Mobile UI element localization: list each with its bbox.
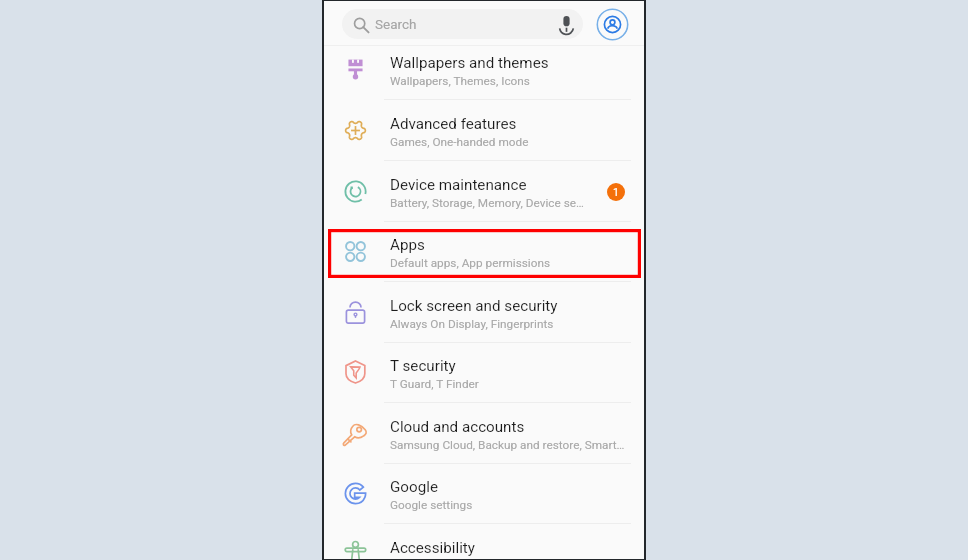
staticText: Wallpapers and themes [390, 54, 549, 72]
staticText: Advanced features [390, 115, 517, 133]
staticText: Cloud and accounts [390, 418, 525, 436]
button[interactable]: Accessibility [324, 524, 644, 559]
button[interactable]: Device maintenance [324, 161, 644, 222]
staticText: Default apps, App permissions [390, 256, 551, 270]
button[interactable]: Voice search [555, 13, 578, 36]
staticText: Google settings [390, 498, 473, 512]
button[interactable]: Advanced features [324, 100, 644, 161]
staticText: Battery, Storage, Memory, Device se… [390, 196, 584, 210]
button[interactable]: Account [596, 8, 629, 41]
staticText: Device maintenance [390, 176, 527, 194]
button[interactable]: Wallpapers and themes [324, 46, 644, 100]
staticText: Games, One-handed mode [390, 135, 529, 149]
staticText: 1 [613, 186, 619, 198]
button[interactable]: Lock screen and security [324, 282, 644, 343]
button[interactable]: Cloud and accounts [324, 403, 644, 464]
staticText: T security [390, 357, 456, 375]
staticText: Lock screen and security [390, 297, 558, 315]
button[interactable]: Apps [324, 221, 644, 282]
staticText: Accessibility [390, 539, 475, 557]
button[interactable]: Google [324, 463, 644, 524]
staticText: Samsung Cloud, Backup and restore, Smart… [390, 438, 625, 452]
staticText: Wallpapers, Themes, Icons [390, 74, 530, 88]
staticText: Google [390, 478, 438, 496]
staticText: Apps [390, 236, 425, 254]
staticText: Search [375, 16, 417, 32]
staticText: T Guard, T Finder [390, 377, 479, 391]
staticText: Always On Display, Fingerprints [390, 317, 554, 331]
button[interactable]: T security [324, 342, 644, 403]
button[interactable]: Search [342, 9, 583, 39]
